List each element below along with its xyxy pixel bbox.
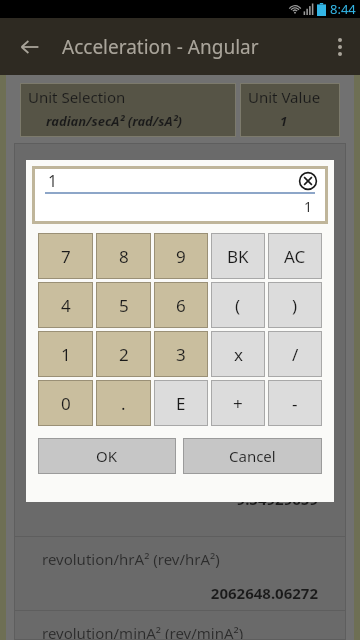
button[interactable]: Back bbox=[10, 27, 50, 67]
staticText: + bbox=[233, 392, 243, 415]
button[interactable]: ( bbox=[211, 282, 265, 328]
staticText: 7 bbox=[61, 245, 71, 268]
staticText: 4 bbox=[61, 294, 71, 317]
staticText: 8 bbox=[119, 245, 129, 268]
button[interactable]: AC bbox=[268, 233, 322, 279]
staticText: AC bbox=[284, 245, 306, 268]
button[interactable]: Unit Value bbox=[240, 83, 340, 137]
staticText: Cancel bbox=[229, 446, 276, 466]
staticText: ) bbox=[292, 294, 298, 317]
button[interactable]: revolution/minA² (rev/minA²) bbox=[14, 611, 346, 640]
button[interactable]: 9.54929659 bbox=[14, 463, 346, 536]
staticText: 2062648.06272 bbox=[42, 583, 318, 603]
staticText: 9.54929659 bbox=[42, 489, 318, 509]
button[interactable]: 3 bbox=[154, 331, 208, 377]
staticText: revolution/hrA² (rev/hrA²) bbox=[42, 549, 220, 569]
staticText: 2 bbox=[119, 343, 129, 366]
staticText: . bbox=[121, 392, 126, 415]
button[interactable]: Unit Selection bbox=[20, 83, 236, 137]
staticText: - bbox=[292, 392, 298, 415]
button[interactable]: + bbox=[211, 380, 265, 426]
staticText: 1 bbox=[42, 197, 312, 216]
staticText: 3 bbox=[176, 343, 186, 366]
staticText: / bbox=[292, 343, 299, 366]
staticText: 9 bbox=[176, 245, 186, 268]
button[interactable]: ) bbox=[268, 282, 322, 328]
button[interactable]: revolution/hrA² (rev/hrA²) bbox=[14, 537, 346, 610]
staticText: 1 bbox=[48, 170, 58, 192]
button[interactable]: 8 bbox=[96, 233, 151, 279]
button[interactable]: 7 bbox=[38, 233, 93, 279]
staticText: Unit Selection bbox=[28, 87, 126, 107]
button[interactable]: 0 bbox=[38, 380, 93, 426]
button[interactable]: 1 bbox=[32, 166, 328, 224]
staticText: 1 bbox=[61, 343, 71, 366]
button[interactable]: Clear bbox=[298, 171, 318, 191]
staticText: Acceleration - Angular bbox=[62, 34, 259, 60]
staticText: Unit Value bbox=[248, 87, 321, 107]
staticText: 5 bbox=[119, 294, 129, 317]
button[interactable]: 5 bbox=[96, 282, 151, 328]
staticText: 0 bbox=[61, 392, 71, 415]
button[interactable]: x bbox=[211, 331, 265, 377]
staticText: E bbox=[176, 392, 186, 415]
button[interactable]: 1 bbox=[38, 331, 93, 377]
button[interactable]: More options bbox=[320, 18, 360, 75]
staticText: 6 bbox=[176, 294, 186, 317]
staticText: revolution/minA² (rev/minA²) bbox=[42, 623, 244, 640]
button[interactable]: / bbox=[268, 331, 322, 377]
staticText: OK bbox=[96, 446, 118, 466]
staticText: x bbox=[234, 343, 243, 366]
button[interactable]: E bbox=[154, 380, 208, 426]
staticText: BK bbox=[227, 245, 249, 268]
button[interactable]: - bbox=[268, 380, 322, 426]
button[interactable]: 9 bbox=[154, 233, 208, 279]
button[interactable]: . bbox=[96, 380, 151, 426]
button[interactable]: 4 bbox=[38, 282, 93, 328]
staticText: 8:44 bbox=[330, 0, 356, 18]
staticText: radian/secA² (rad/sA²) bbox=[46, 112, 183, 130]
button[interactable]: Cancel bbox=[183, 438, 322, 474]
button[interactable]: 6 bbox=[154, 282, 208, 328]
button[interactable]: 2 bbox=[96, 331, 151, 377]
staticText: ( bbox=[235, 294, 241, 317]
staticText: 1 bbox=[280, 112, 288, 130]
button[interactable]: OK bbox=[38, 438, 176, 474]
button[interactable]: BK bbox=[211, 233, 265, 279]
